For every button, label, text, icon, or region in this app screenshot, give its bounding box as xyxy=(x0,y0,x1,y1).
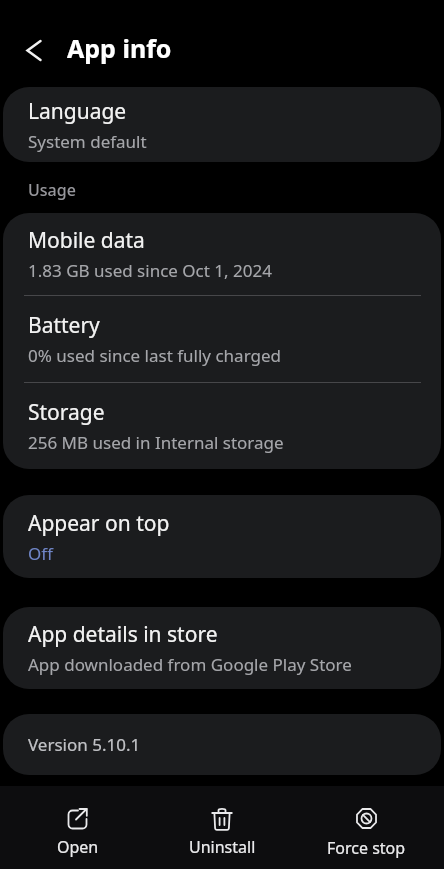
staticText: Usage xyxy=(28,179,76,201)
staticText: System default xyxy=(28,130,147,153)
staticText: App downloaded from Google Play Store xyxy=(28,653,352,676)
staticText: Appear on top xyxy=(28,509,170,538)
button[interactable]: Battery xyxy=(3,296,441,382)
staticText: Version 5.10.1 xyxy=(28,733,141,756)
button[interactable]: Language xyxy=(3,87,441,162)
button[interactable]: Mobile data xyxy=(3,213,441,469)
staticText: Force stop xyxy=(327,837,406,859)
staticText: App info xyxy=(67,31,172,65)
staticText: 0% used since last fully charged xyxy=(28,344,281,367)
button[interactable]: Version 5.10.1 xyxy=(3,714,441,775)
staticText: Open xyxy=(57,836,99,858)
button[interactable]: App details in store xyxy=(3,607,441,689)
button[interactable] xyxy=(18,34,50,66)
staticText: Language xyxy=(28,97,127,126)
staticText: 256 MB used in Internal storage xyxy=(28,431,284,454)
button[interactable]: Appear on top xyxy=(3,495,441,578)
button[interactable]: Force stop xyxy=(294,786,438,869)
staticText: Battery xyxy=(28,311,100,340)
staticText: Storage xyxy=(28,398,105,427)
staticText: App details in store xyxy=(28,620,218,649)
button[interactable]: Storage xyxy=(3,383,441,469)
staticText: 1.83 GB used since Oct 1, 2024 xyxy=(28,259,272,282)
button[interactable]: Mobile data xyxy=(3,213,441,295)
staticText: Mobile data xyxy=(28,226,145,255)
staticText: Uninstall xyxy=(189,836,256,858)
button[interactable]: Uninstall xyxy=(150,786,294,869)
staticText: Off xyxy=(28,542,53,565)
button[interactable]: Open xyxy=(6,786,150,869)
